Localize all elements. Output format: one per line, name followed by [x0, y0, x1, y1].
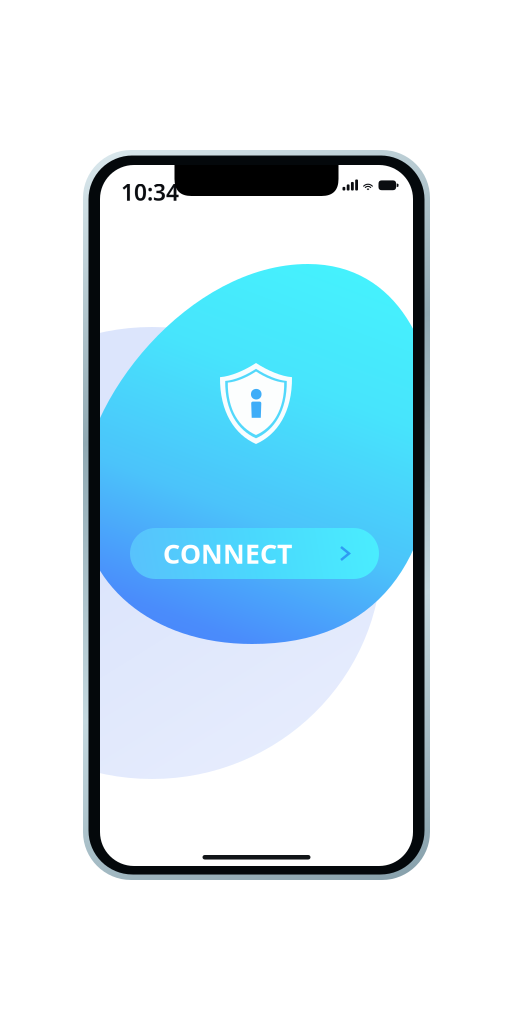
staticText: 10:34	[121, 177, 179, 207]
staticText: CONNECT	[163, 536, 292, 571]
button[interactable]: CONNECT	[130, 528, 379, 579]
